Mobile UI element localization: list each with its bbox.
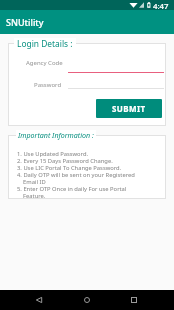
button[interactable]: Back [25,291,53,309]
staticText: Email ID [17,178,46,186]
staticText: Feature. [17,192,46,200]
staticText: 3. Use LIC Portal To Change Password. [17,164,122,172]
staticText: Password [34,81,62,89]
staticText: 2. Every 15 Days Password Change. [17,157,113,165]
staticText: 4. Daily OTP will be sent on your Regist… [17,171,135,179]
staticText: Agency Code [26,59,63,67]
button[interactable]: Recent apps [120,291,148,309]
staticText: SNUtility [6,16,44,28]
staticText: 5. Enter OTP Once in daily For use Porta… [17,185,127,193]
staticText: Login Details : [17,38,73,49]
button[interactable]: SUBMIT [96,99,162,118]
staticText: 1. Use Updated Password. [17,150,88,158]
button[interactable]: Home [73,291,101,309]
staticText: 4:47 [153,1,169,11]
staticText: SUBMIT [112,103,146,114]
staticText: Important Information : [18,130,94,140]
